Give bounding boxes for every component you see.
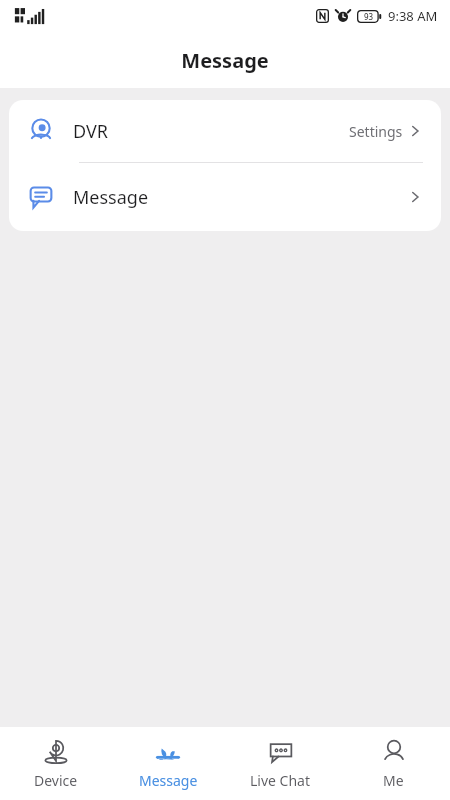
staticText: Message: [139, 771, 198, 790]
button[interactable]: Device: [0, 727, 112, 800]
staticText: Device: [34, 771, 78, 790]
staticText: Live Chat: [250, 771, 311, 790]
staticText: 93: [364, 11, 374, 22]
staticText: DVR: [73, 119, 108, 144]
button[interactable]: Me: [337, 727, 450, 800]
staticText: Message: [181, 47, 269, 74]
button[interactable]: Message: [9, 163, 441, 231]
staticText: Message: [73, 185, 149, 210]
staticText: 9:38 AM: [388, 7, 438, 25]
button[interactable]: DVR: [9, 100, 441, 162]
staticText: Me: [383, 771, 404, 790]
staticText: Settings: [349, 122, 403, 141]
button[interactable]: Message: [112, 727, 224, 800]
button[interactable]: Live Chat: [224, 727, 337, 800]
